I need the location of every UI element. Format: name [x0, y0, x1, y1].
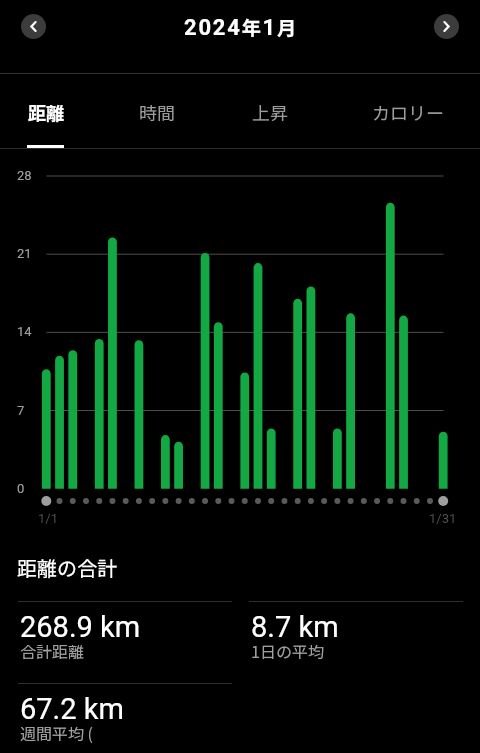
button[interactable]: 距離: [0, 76, 98, 148]
staticText: 67.2 km: [20, 692, 124, 726]
button[interactable]: 上昇: [218, 76, 322, 148]
staticText: 14: [17, 324, 32, 339]
staticText: 上昇: [252, 99, 288, 125]
button[interactable]: 67.2 km: [18, 683, 232, 753]
staticText: 時間: [139, 99, 175, 125]
staticText: 1/31: [429, 511, 457, 526]
staticText: 距離: [28, 99, 64, 125]
staticText: 7: [17, 403, 25, 418]
staticText: 週間平均 (: [20, 721, 93, 744]
button[interactable]: 268.9 km: [18, 601, 232, 681]
staticText: カロリー: [372, 99, 444, 125]
button[interactable]: Previous month: [21, 14, 46, 39]
staticText: 0: [17, 481, 25, 496]
staticText: 28: [17, 168, 32, 183]
staticText: 268.9 km: [20, 610, 141, 644]
button[interactable]: 時間: [105, 76, 209, 148]
staticText: 2024年1月: [184, 13, 298, 41]
staticText: 距離の合計: [17, 553, 117, 582]
staticText: 21: [17, 246, 32, 261]
staticText: 8.7 km: [251, 610, 339, 644]
button[interactable]: カロリー: [356, 76, 460, 148]
staticText: 合計距離: [20, 639, 85, 662]
staticText: 1/1: [38, 511, 58, 526]
staticText: 1日の平均: [251, 639, 324, 662]
button[interactable]: 8.7 km: [249, 601, 463, 681]
button[interactable]: Next month: [434, 14, 459, 39]
